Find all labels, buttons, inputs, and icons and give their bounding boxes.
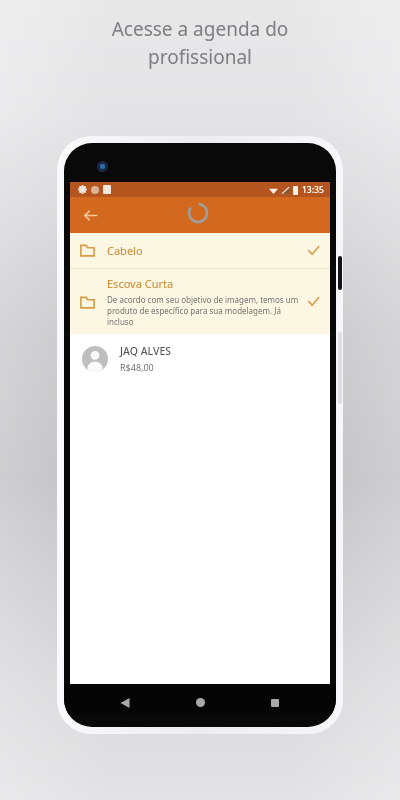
staticText: De acordo com seu objetivo de imagem, te… — [107, 294, 303, 327]
staticText: JAQ ALVES — [120, 344, 172, 358]
button[interactable]: Cabelo — [70, 233, 330, 268]
staticText: Acesse a agenda do profissional — [0, 16, 400, 70]
staticText: 13:35 — [302, 184, 324, 196]
button[interactable]: Recents — [261, 691, 289, 714]
button[interactable]: JAQ ALVES — [70, 334, 330, 383]
button[interactable]: Back — [74, 199, 106, 231]
button[interactable]: Back — [111, 691, 139, 714]
button[interactable]: Home — [186, 691, 214, 714]
staticText: Cabelo — [107, 243, 307, 258]
staticText: Escova Curta — [107, 276, 174, 291]
button[interactable]: Escova Curta — [70, 269, 330, 334]
staticText: R$48,00 — [120, 361, 154, 373]
